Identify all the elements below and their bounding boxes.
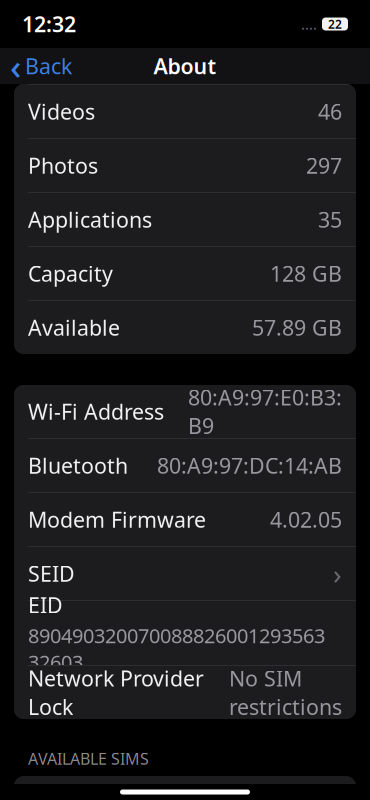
staticText: 297 [306, 151, 342, 180]
staticText: 128 GB [270, 259, 342, 288]
button[interactable]: SEID [14, 547, 356, 600]
staticText: No SIM restrictions [229, 664, 342, 721]
staticText: 57.89 GB [252, 313, 342, 342]
staticText: Network Provider Lock [28, 664, 204, 721]
staticText: SEID [28, 559, 75, 588]
staticText: › [333, 555, 342, 592]
button[interactable]: Available [14, 301, 356, 354]
staticText: Photos [28, 151, 98, 180]
button[interactable]: Wi-Fi Address [14, 385, 356, 438]
staticText: 4.02.05 [270, 505, 342, 534]
button[interactable]: Modem Firmware [14, 493, 356, 546]
staticText: 46 [318, 97, 342, 126]
staticText: 80:A9:97:DC:14:AB [157, 451, 342, 480]
button[interactable]: EID [14, 601, 356, 665]
staticText: Videos [28, 97, 95, 126]
button[interactable]: Videos [14, 85, 356, 138]
staticText: 12:32 [22, 10, 76, 38]
staticText: Applications [28, 205, 152, 234]
staticText: Modem Firmware [28, 505, 206, 534]
button[interactable]: Photos [14, 139, 356, 192]
staticText: .... [301, 14, 317, 34]
staticText: ‹ [10, 43, 21, 89]
staticText: 80:A9:97:E0:B3:B9 [188, 383, 342, 440]
staticText: 22 [328, 16, 342, 32]
button[interactable]: Bluetooth [14, 439, 356, 492]
staticText: About [153, 52, 216, 80]
staticText: Back [25, 52, 72, 80]
button[interactable]: Capacity [14, 247, 356, 300]
staticText: Available [28, 313, 120, 342]
button[interactable]: Network Provider Lock [14, 666, 356, 719]
button[interactable]: ‹ [0, 48, 82, 84]
staticText: Physical SIM [28, 789, 153, 800]
staticText: Wi-Fi Address [28, 397, 164, 426]
staticText: 89049032007008882600129356332603 [28, 622, 325, 675]
staticText: 35 [318, 205, 342, 234]
button[interactable]: Applications [14, 193, 356, 246]
staticText: EID [28, 591, 63, 619]
button[interactable]: Physical SIM [14, 776, 356, 800]
staticText: AVAILABLE SIMS [28, 748, 149, 769]
staticText: Bluetooth [28, 451, 128, 480]
staticText: Capacity [28, 259, 113, 288]
